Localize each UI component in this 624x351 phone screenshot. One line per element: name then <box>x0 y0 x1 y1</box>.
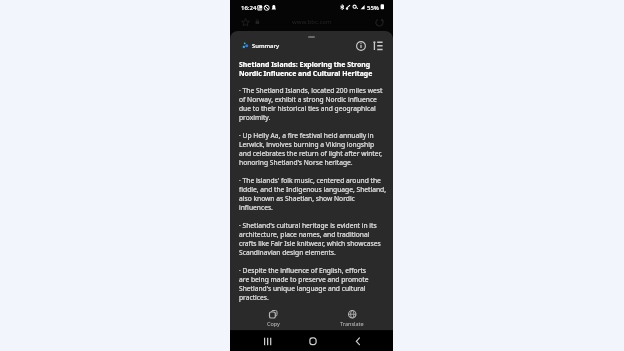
staticText: · Up Helly Aa, a fire festival held annu… <box>239 131 382 167</box>
staticText: Summary <box>252 42 280 50</box>
staticText: 16:24 <box>241 4 257 12</box>
button[interactable]: Copy <box>253 308 293 330</box>
staticText: · The Shetland Islands, located 200 mile… <box>239 86 383 122</box>
staticText: Shetland Islands: Exploring the Strong N… <box>239 60 373 78</box>
button[interactable]: Recent apps <box>259 332 277 350</box>
button[interactable]: Text options <box>371 39 385 53</box>
button[interactable]: Back <box>349 332 367 350</box>
staticText: www.bbc.com <box>292 18 332 26</box>
staticText: · Despite the influence of English, effo… <box>239 266 369 302</box>
button[interactable]: Home <box>304 332 322 350</box>
staticText: · Shetland's cultural heritage is eviden… <box>239 221 381 257</box>
button[interactable]: Translate <box>332 308 372 330</box>
button[interactable]: Info <box>354 39 368 53</box>
staticText: Copy <box>267 320 280 327</box>
staticText: · The islands' folk music, centered arou… <box>239 176 386 212</box>
staticText: Translate <box>340 320 364 327</box>
staticText: 55% <box>367 4 379 12</box>
